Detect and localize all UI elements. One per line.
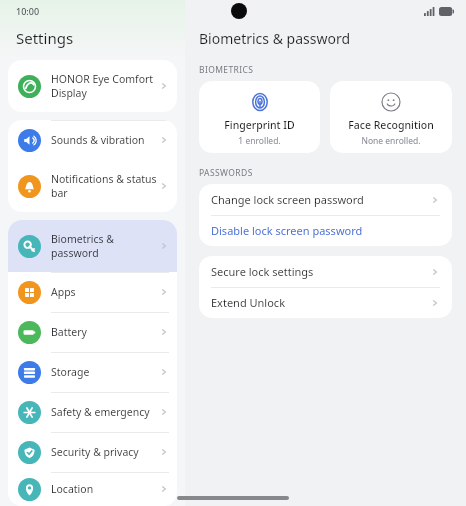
staticText: BIOMETRICS	[199, 64, 254, 76]
staticText: None enrolled.	[361, 135, 421, 147]
staticText: Security & privacy	[51, 445, 159, 459]
staticText: Safety & emergency	[51, 405, 159, 419]
staticText: Settings	[16, 28, 74, 48]
button[interactable]: Apps	[8, 272, 177, 312]
staticText: Disable lock screen password	[211, 223, 440, 238]
button[interactable]: Disable lock screen password	[199, 215, 452, 246]
button[interactable]: Change lock screen password	[199, 184, 452, 215]
staticText: Biometrics & password	[199, 29, 351, 48]
button[interactable]: Secure lock settings	[199, 256, 452, 287]
button[interactable]: Sounds & vibration	[8, 120, 177, 160]
button[interactable]: Face Recognition	[330, 81, 452, 153]
staticText: Face Recognition	[348, 118, 434, 132]
staticText: Apps	[51, 285, 159, 299]
staticText: Notifications & status bar	[51, 172, 159, 200]
button[interactable]: Security & privacy	[8, 432, 177, 472]
button[interactable]: Notifications & status bar	[8, 160, 177, 212]
staticText: Battery	[51, 325, 159, 339]
button[interactable]: Battery	[8, 312, 177, 352]
staticText: HONOR Eye Comfort Display	[51, 72, 159, 100]
staticText: Location	[51, 482, 159, 496]
button[interactable]: HONOR Eye Comfort Display	[8, 60, 177, 112]
button[interactable]: Safety & emergency	[8, 392, 177, 432]
staticText: 10:00	[16, 5, 40, 17]
button[interactable]: Fingerprint ID	[199, 81, 320, 153]
staticText: Storage	[51, 365, 159, 379]
button[interactable]: Extend Unlock	[199, 287, 452, 318]
staticText: Extend Unlock	[211, 295, 430, 310]
staticText: 1 enrolled.	[238, 135, 281, 147]
staticText: Secure lock settings	[211, 264, 430, 279]
button[interactable]: Location	[8, 472, 177, 506]
button[interactable]: Biometrics & password	[8, 220, 177, 272]
staticText: Biometrics & password	[51, 232, 159, 260]
staticText: Change lock screen password	[211, 192, 430, 207]
staticText: Sounds & vibration	[51, 133, 159, 147]
staticText: PASSWORDS	[199, 167, 253, 179]
staticText: Fingerprint ID	[224, 118, 295, 132]
button[interactable]: Storage	[8, 352, 177, 392]
